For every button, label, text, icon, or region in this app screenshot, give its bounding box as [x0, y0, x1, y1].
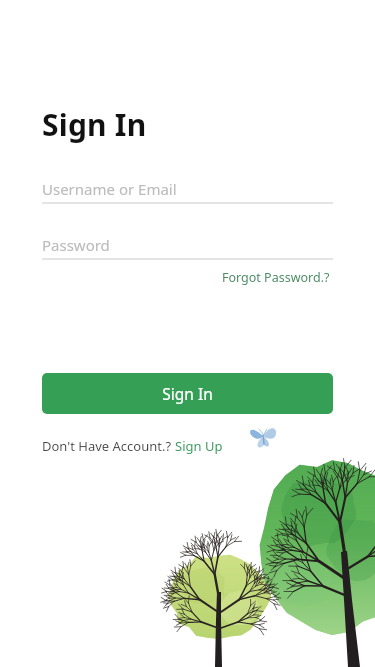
staticText: Don't Have Account.?	[42, 437, 175, 455]
button[interactable]: Username or Email	[42, 176, 333, 202]
staticText: Password	[42, 235, 110, 255]
button[interactable]: Sign In	[42, 373, 333, 414]
staticText: Sign Up	[175, 437, 223, 455]
staticText: Forgot Password.?	[222, 269, 330, 286]
button[interactable]: Forgot Password.?	[218, 265, 334, 290]
button[interactable]: Password	[42, 232, 333, 258]
button[interactable]: Sign Up	[175, 437, 223, 455]
staticText: Sign In	[162, 383, 213, 404]
staticText: Sign In	[42, 104, 147, 145]
staticText: Username or Email	[42, 179, 177, 199]
